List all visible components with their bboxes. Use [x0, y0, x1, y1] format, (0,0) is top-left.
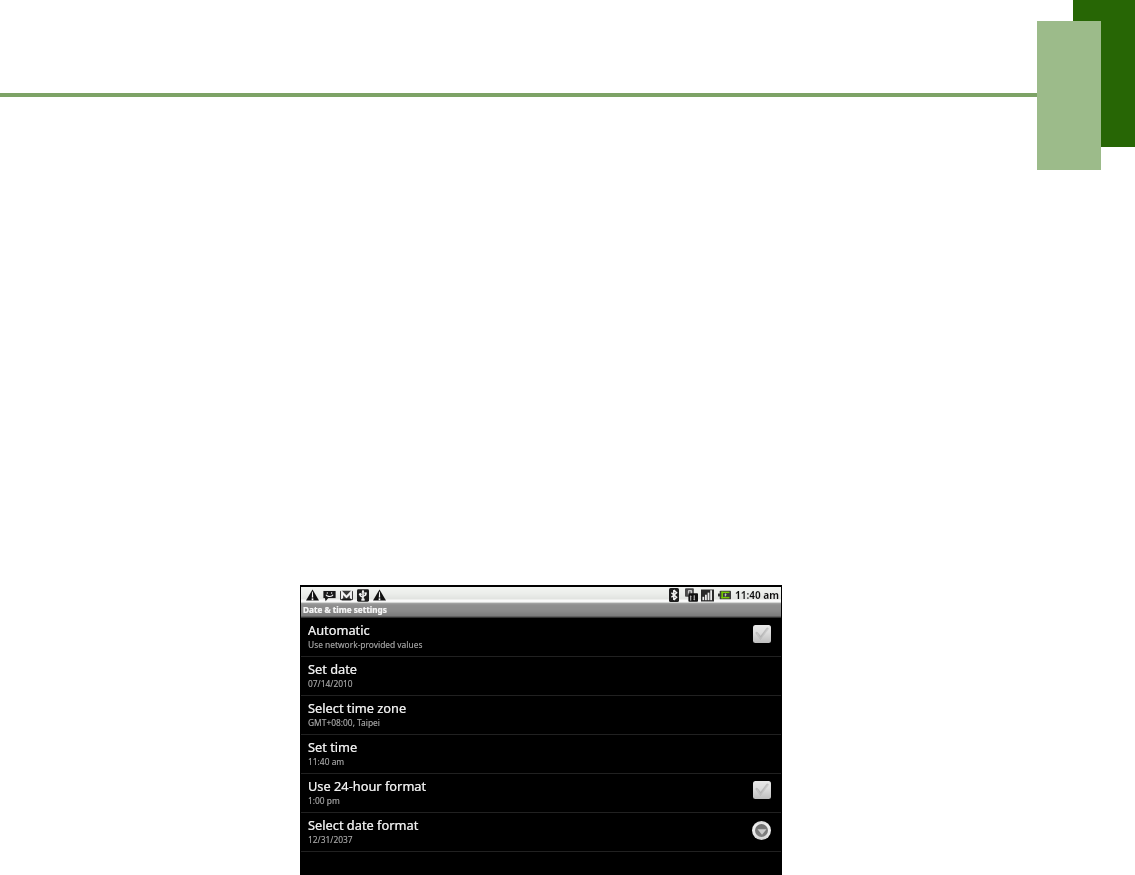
staticText: 11:40 am [308, 756, 345, 767]
staticText: 07/14/2010 [308, 678, 353, 689]
button[interactable]: Toggle [753, 781, 771, 799]
button[interactable]: Use 24-hour format [301, 774, 781, 813]
staticText: 11:40 am [735, 588, 780, 602]
staticText: Use 24-hour format [308, 777, 427, 794]
staticText: GMT+08:00, Taipei [308, 717, 380, 728]
staticText: Set time [308, 738, 358, 755]
staticText: 1:00 pm [308, 795, 340, 806]
staticText: 12/31/2037 [308, 834, 353, 845]
button[interactable]: Select date format [752, 821, 771, 840]
button[interactable]: Toggle [753, 625, 771, 643]
button[interactable]: Set date [301, 657, 781, 696]
button[interactable]: Select time zone [301, 696, 781, 735]
staticText: Select time zone [308, 699, 407, 716]
staticText: Use network-provided values [308, 639, 423, 650]
staticText: Select date format [308, 816, 419, 833]
button[interactable]: Automatic [301, 618, 781, 657]
button[interactable]: Select date format [301, 813, 781, 852]
staticText: Automatic [308, 621, 370, 638]
button[interactable]: Set time [301, 735, 781, 774]
staticText: Set date [308, 660, 358, 677]
staticText: Date & time settings [303, 604, 387, 615]
